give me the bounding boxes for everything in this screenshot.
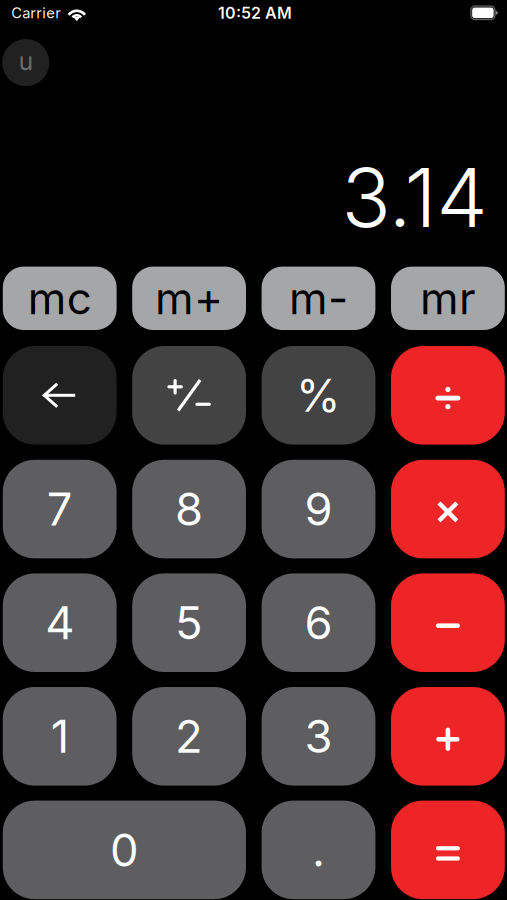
button[interactable]: Multiply (391, 460, 505, 558)
staticText: 4 (45, 595, 74, 650)
staticText: 8 (175, 482, 203, 537)
button[interactable]: % (262, 346, 375, 445)
button[interactable]: m- (262, 267, 375, 330)
staticText: 3.14 (341, 148, 487, 246)
staticText: . (312, 822, 325, 877)
button[interactable]: . (262, 801, 375, 899)
staticText: 10:52 AM (218, 3, 292, 23)
button[interactable]: Backspace (3, 346, 117, 445)
button[interactable]: Equals (391, 801, 505, 899)
staticText: m+ (155, 272, 223, 325)
button[interactable]: 4 (3, 573, 117, 672)
button[interactable]: Add (391, 687, 505, 786)
button[interactable]: Toggle sign (132, 346, 246, 445)
staticText: 7 (47, 482, 73, 537)
button[interactable]: Divide (391, 346, 505, 445)
button[interactable]: 0 (3, 801, 246, 899)
staticText: 9 (304, 482, 332, 537)
button[interactable]: 8 (132, 460, 246, 558)
staticText: u (19, 46, 33, 76)
button[interactable]: 1 (3, 687, 117, 786)
button[interactable]: Account (2, 39, 49, 86)
staticText: % (296, 368, 341, 423)
staticText: 1 (51, 709, 69, 764)
staticText: m- (289, 272, 348, 325)
button[interactable]: 6 (262, 573, 375, 672)
staticText: 3 (304, 709, 332, 764)
staticText: Carrier (11, 4, 61, 22)
staticText: 2 (175, 709, 203, 764)
button[interactable]: mc (3, 267, 117, 330)
button[interactable]: 2 (132, 687, 246, 786)
staticText: 0 (110, 822, 139, 877)
button[interactable]: 5 (132, 573, 246, 672)
staticText: 5 (175, 595, 203, 650)
button[interactable]: 7 (3, 460, 117, 558)
staticText: 6 (304, 595, 332, 650)
button[interactable]: m+ (132, 267, 246, 330)
button[interactable]: 3 (262, 687, 375, 786)
staticText: mr (420, 272, 476, 325)
button[interactable]: 9 (262, 460, 375, 558)
button[interactable]: mr (391, 267, 505, 330)
button[interactable]: Subtract (391, 573, 505, 672)
staticText: mc (28, 272, 92, 325)
